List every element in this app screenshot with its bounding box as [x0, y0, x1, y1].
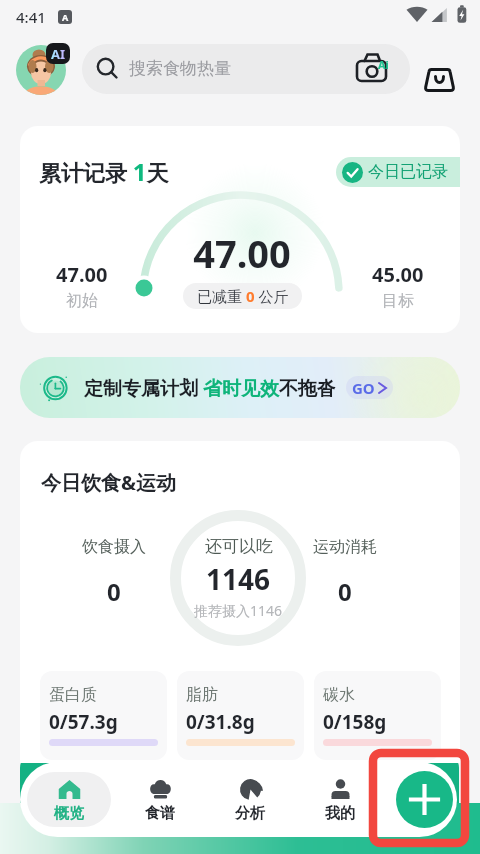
staticText: 运动消耗	[313, 537, 377, 557]
button[interactable]: 碳水	[314, 671, 441, 760]
staticText: 还可以吃	[205, 536, 273, 557]
staticText: 已减重 0 公斤	[197, 286, 289, 306]
button[interactable]: 食谱	[118, 772, 202, 827]
staticText: A	[62, 11, 69, 23]
button[interactable]: 今日已记录	[336, 157, 460, 187]
button[interactable]: Shop	[422, 56, 457, 91]
staticText: 定制专属计划 省时见效不拖沓	[84, 375, 336, 401]
staticText: 目标	[382, 291, 414, 311]
staticText: 47.00	[56, 261, 108, 288]
staticText: 饮食摄入	[82, 537, 146, 557]
staticText: Ai	[378, 57, 389, 72]
button[interactable]: 我的	[298, 772, 382, 827]
staticText: 碳水	[323, 685, 355, 705]
staticText: 蛋白质	[49, 685, 97, 705]
staticText: 搜索食物热量	[129, 58, 231, 79]
staticText: 4:41	[16, 7, 46, 27]
staticText: 今日已记录	[368, 162, 448, 182]
staticText: 我的	[325, 804, 355, 823]
staticText: 0	[107, 575, 121, 608]
button[interactable]: 蛋白质	[40, 671, 167, 760]
staticText: 初始	[66, 291, 98, 311]
staticText: 概览	[54, 804, 84, 823]
staticText: AI	[51, 45, 66, 63]
staticText: 1146	[206, 560, 271, 598]
staticText: 今日饮食&运动	[41, 469, 176, 496]
button[interactable]: Profile	[16, 45, 66, 95]
staticText: GO	[352, 378, 375, 398]
button[interactable]: Add record	[396, 771, 453, 828]
staticText: 累计记录 1天	[39, 155, 169, 188]
button[interactable]: 概览	[27, 772, 111, 827]
button[interactable]: 搜索食物热量	[82, 44, 410, 94]
button[interactable]: 脂肪	[177, 671, 304, 760]
button[interactable]: GO	[346, 376, 393, 399]
staticText: 45.00	[372, 261, 424, 288]
button[interactable]: 分析	[208, 772, 292, 827]
staticText: 分析	[235, 804, 265, 823]
staticText: 脂肪	[186, 685, 218, 705]
staticText: 食谱	[145, 804, 175, 823]
staticText: 47.00	[192, 227, 292, 279]
staticText: 0/31.8g	[186, 709, 255, 735]
staticText: 0/158g	[323, 709, 387, 735]
staticText: 0	[338, 575, 352, 608]
button[interactable]: 定制专属计划 省时见效不拖沓	[20, 357, 460, 418]
staticText: 0/57.3g	[49, 709, 118, 735]
button[interactable]: AI photo search	[354, 50, 392, 88]
staticText: 推荐摄入1146	[194, 601, 283, 620]
